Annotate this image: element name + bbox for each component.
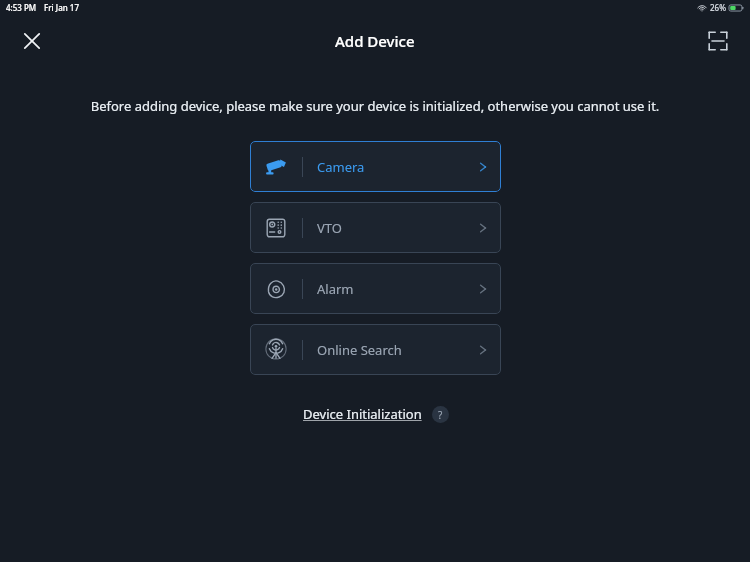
staticText: Before adding device, please make sure y… <box>40 97 710 115</box>
staticText: 26% <box>710 2 726 13</box>
button[interactable]: Device Initialization <box>301 401 424 427</box>
button[interactable]: Alarm <box>250 263 501 314</box>
staticText: 4:53 PM <box>6 2 37 13</box>
staticText: Fri Jan 17 <box>44 2 79 13</box>
staticText: VTO <box>317 219 342 237</box>
staticText: Camera <box>317 158 365 176</box>
button[interactable]: VTO <box>250 202 501 253</box>
staticText: Add Device <box>335 31 415 51</box>
staticText: ? <box>438 408 443 422</box>
button[interactable]: Scan QR code <box>698 21 738 61</box>
staticText: Alarm <box>317 280 354 298</box>
button[interactable]: Close <box>12 21 52 61</box>
button[interactable]: Online Search <box>250 324 501 375</box>
button[interactable]: Help <box>432 406 449 423</box>
staticText: Online Search <box>317 341 402 359</box>
button[interactable]: Camera <box>250 141 501 192</box>
staticText: Device Initialization <box>303 405 422 423</box>
